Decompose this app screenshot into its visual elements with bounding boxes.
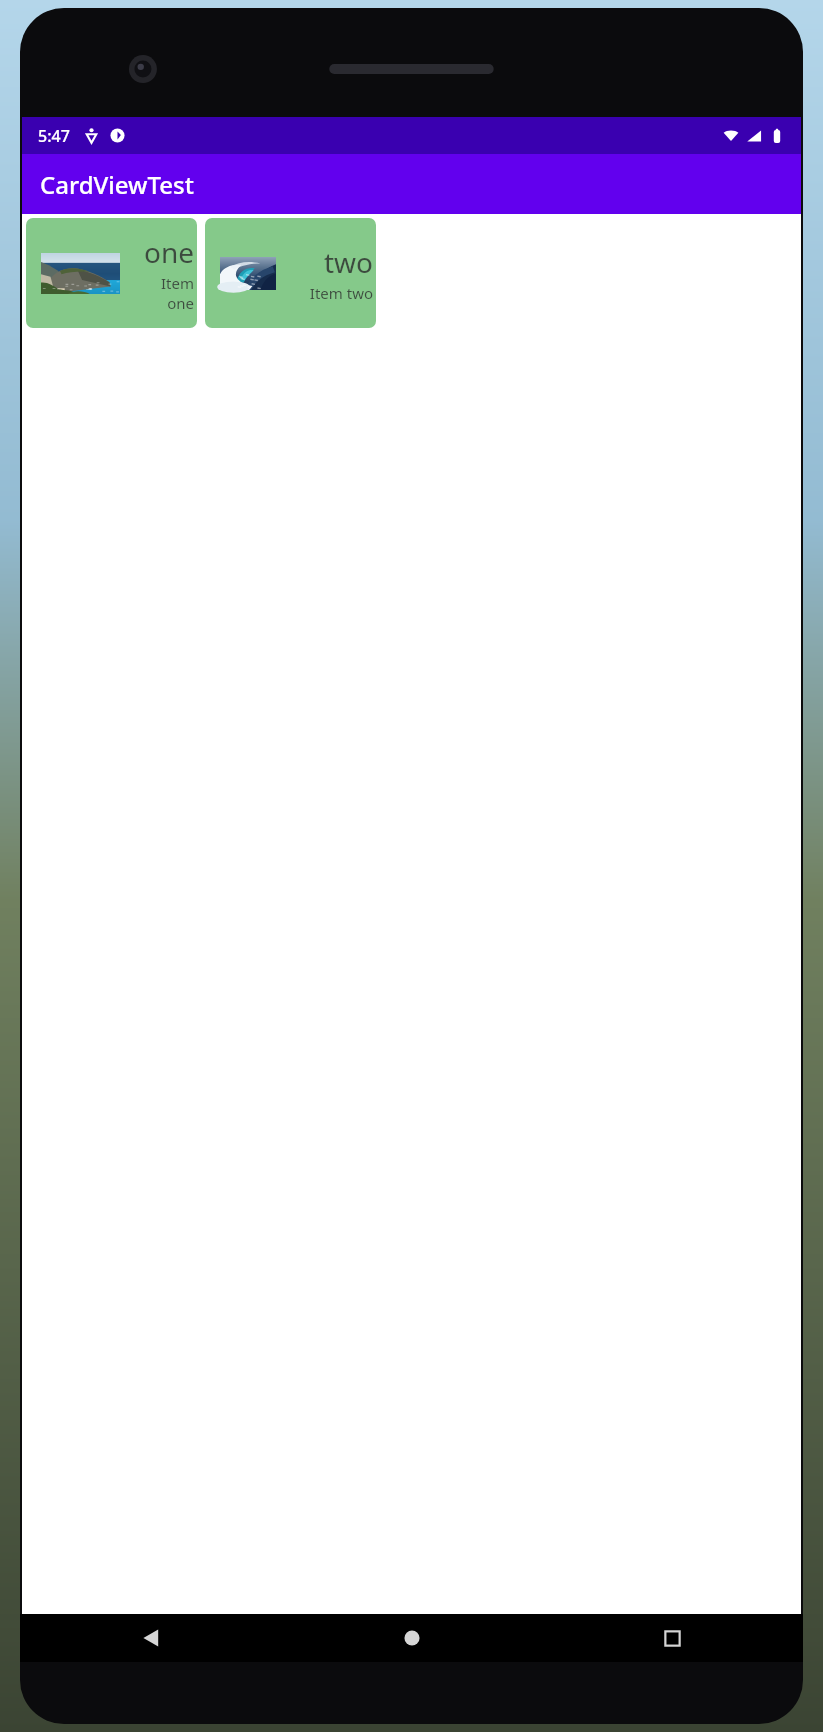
staticText: one bbox=[143, 233, 194, 271]
button[interactable]: Back bbox=[20, 1614, 281, 1662]
button[interactable]: Home bbox=[281, 1614, 542, 1662]
button[interactable]: two bbox=[205, 218, 376, 328]
staticText: Item one bbox=[132, 273, 194, 313]
staticText: Item two bbox=[309, 283, 373, 303]
staticText: CardViewTest bbox=[40, 168, 194, 201]
button[interactable]: one bbox=[26, 218, 197, 328]
button[interactable]: Recent apps bbox=[542, 1614, 803, 1662]
staticText: 5:47 bbox=[38, 125, 70, 147]
staticText: two bbox=[323, 243, 373, 281]
